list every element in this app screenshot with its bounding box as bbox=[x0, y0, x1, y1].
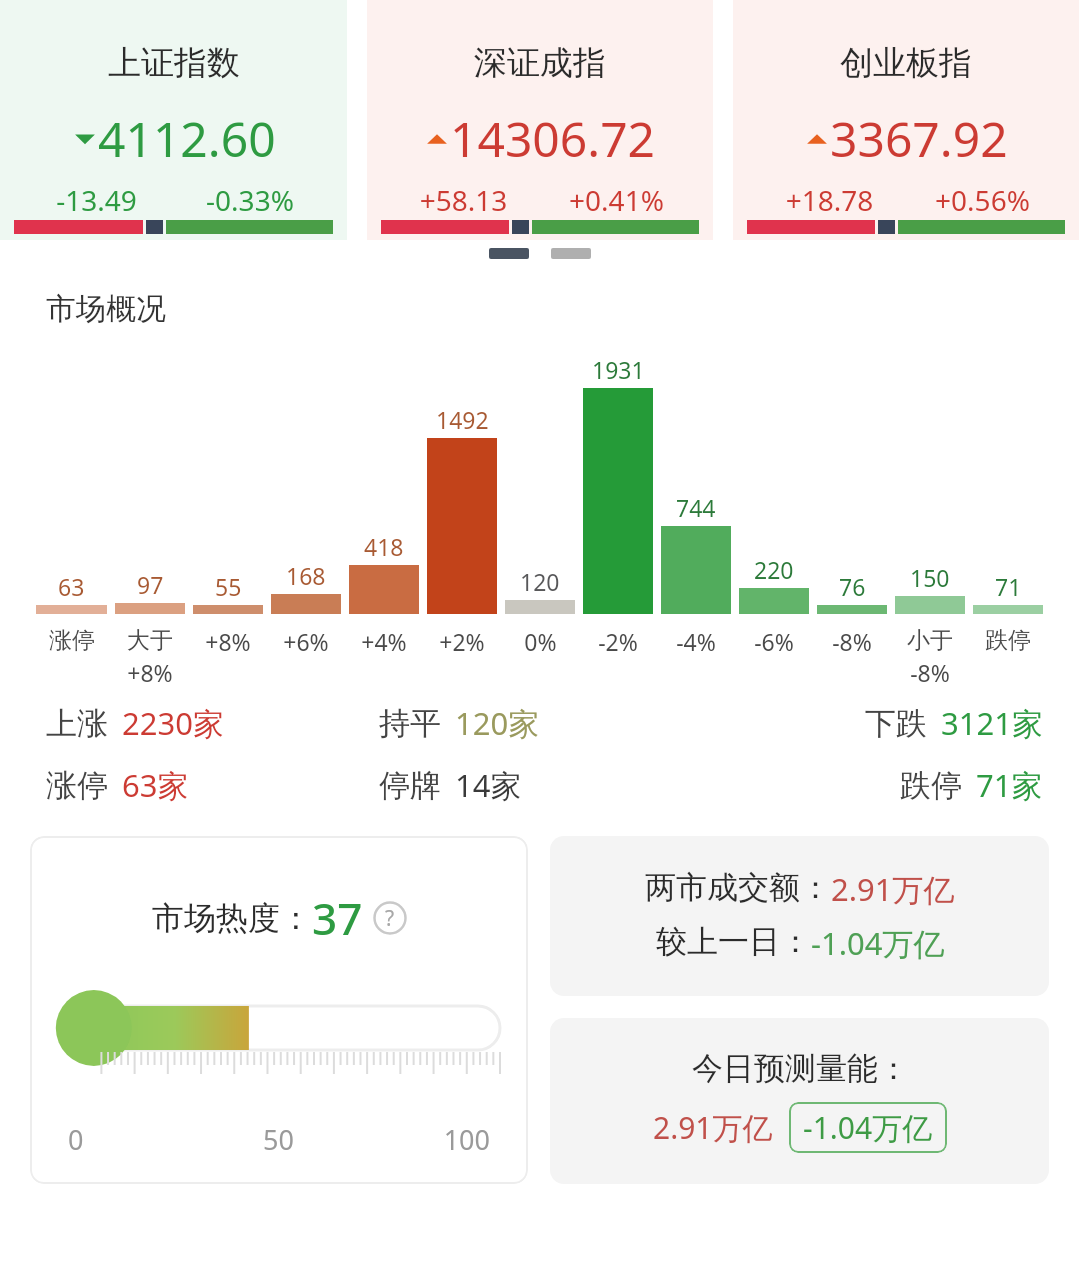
staticText: 14306.72 bbox=[450, 106, 656, 171]
staticText: 3367.92 bbox=[830, 106, 1008, 171]
staticText: 63家 bbox=[122, 764, 189, 806]
staticText: 168 bbox=[286, 560, 326, 591]
button[interactable]: 今日预测量能： bbox=[550, 1018, 1049, 1184]
staticText: 2.91万亿 bbox=[831, 868, 955, 910]
staticText: 持平 bbox=[379, 704, 441, 743]
staticText: -8% bbox=[832, 626, 872, 657]
button[interactable]: 1931 bbox=[583, 354, 653, 614]
staticText: 市场热度： bbox=[152, 898, 312, 938]
button[interactable]: 120 bbox=[505, 566, 575, 614]
staticText: 418 bbox=[364, 531, 404, 562]
staticText: 97 bbox=[137, 569, 164, 600]
staticText: +58.13 bbox=[387, 181, 540, 219]
staticText: 0% bbox=[524, 626, 557, 657]
staticText: -8% bbox=[910, 657, 950, 688]
staticText: 下跌 bbox=[865, 704, 927, 743]
button[interactable]: 55 bbox=[193, 571, 263, 614]
staticText: 涨停 bbox=[49, 626, 95, 655]
staticText: -2% bbox=[598, 626, 638, 657]
staticText: +8% bbox=[205, 626, 251, 657]
staticText: 3121家 bbox=[941, 702, 1043, 744]
staticText: +4% bbox=[361, 626, 407, 657]
staticText: -4% bbox=[676, 626, 716, 657]
staticText: -0.33% bbox=[173, 181, 327, 219]
staticText: -1.04万亿 bbox=[803, 1107, 933, 1148]
staticText: 0 bbox=[68, 1121, 208, 1158]
staticText: 71 bbox=[995, 571, 1022, 602]
staticText: 37 bbox=[312, 888, 363, 948]
staticText: +0.56% bbox=[906, 181, 1059, 219]
button[interactable]: 上证指数 bbox=[0, 0, 347, 240]
staticText: -1.04万亿 bbox=[811, 922, 945, 964]
button[interactable]: 市场热度： bbox=[30, 836, 528, 1184]
staticText: 150 bbox=[910, 562, 950, 593]
staticText: 涨停 bbox=[46, 766, 108, 805]
button[interactable]: 1492 bbox=[427, 404, 497, 614]
staticText: +8% bbox=[127, 657, 173, 688]
button[interactable]: 两市成交额： bbox=[550, 836, 1049, 996]
staticText: 50 bbox=[208, 1121, 349, 1158]
button[interactable]: 76 bbox=[817, 571, 887, 614]
staticText: -13.49 bbox=[20, 181, 173, 219]
button[interactable]: 创业板指 bbox=[733, 0, 1079, 240]
staticText: 14家 bbox=[455, 764, 522, 806]
staticText: 上涨 bbox=[46, 704, 108, 743]
button[interactable]: 150 bbox=[895, 562, 965, 614]
button[interactable]: 帮助 bbox=[373, 901, 407, 935]
staticText: 71家 bbox=[976, 764, 1043, 806]
staticText: 100 bbox=[349, 1121, 490, 1158]
button[interactable]: 深证成指 bbox=[367, 0, 713, 240]
staticText: +18.78 bbox=[753, 181, 906, 219]
button[interactable]: 63 bbox=[36, 571, 107, 614]
staticText: 创业板指 bbox=[840, 42, 972, 84]
staticText: 跌停 bbox=[900, 766, 962, 805]
staticText: 63 bbox=[58, 571, 85, 602]
staticText: 大于 bbox=[127, 626, 173, 655]
staticText: 4112.60 bbox=[98, 106, 276, 171]
staticText: 深证成指 bbox=[474, 42, 606, 84]
staticText: 1931 bbox=[592, 354, 645, 385]
staticText: 两市成交额： bbox=[645, 868, 831, 907]
staticText: 2.91万亿 bbox=[653, 1107, 773, 1148]
staticText: 较上一日： bbox=[656, 922, 811, 961]
button[interactable]: 71 bbox=[973, 571, 1043, 614]
staticText: 市场概况 bbox=[46, 290, 166, 328]
staticText: 120家 bbox=[455, 702, 540, 744]
staticText: 220 bbox=[754, 554, 794, 585]
staticText: 55 bbox=[215, 571, 242, 602]
button[interactable]: 97 bbox=[115, 569, 185, 614]
staticText: 跌停 bbox=[985, 626, 1031, 655]
staticText: 2230家 bbox=[122, 702, 224, 744]
staticText: 停牌 bbox=[379, 766, 441, 805]
staticText: -6% bbox=[754, 626, 794, 657]
staticText: ? bbox=[385, 904, 395, 933]
staticText: 今日预测量能： bbox=[692, 1049, 909, 1088]
staticText: 小于 bbox=[907, 626, 953, 655]
staticText: +2% bbox=[439, 626, 485, 657]
staticText: 744 bbox=[676, 492, 716, 523]
button[interactable]: 418 bbox=[349, 531, 419, 614]
staticText: +0.41% bbox=[540, 181, 693, 219]
staticText: 上证指数 bbox=[108, 42, 240, 84]
button[interactable]: 168 bbox=[271, 560, 341, 614]
staticText: 1492 bbox=[436, 404, 489, 435]
staticText: 76 bbox=[839, 571, 866, 602]
staticText: +6% bbox=[283, 626, 329, 657]
button[interactable]: 220 bbox=[739, 554, 809, 614]
staticText: 120 bbox=[520, 566, 560, 597]
button[interactable]: 744 bbox=[661, 492, 731, 614]
